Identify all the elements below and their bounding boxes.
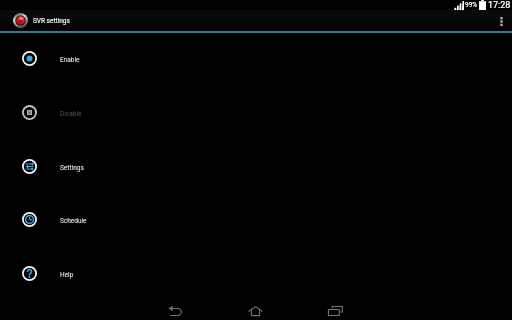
- button[interactable]: Schedule: [0, 192, 512, 246]
- staticText: Schedule: [60, 217, 87, 225]
- staticText: Help: [60, 271, 74, 279]
- button[interactable]: Settings: [0, 139, 512, 193]
- button[interactable]: Home: [241, 301, 269, 320]
- button[interactable]: Recents: [321, 301, 349, 320]
- staticText: 99%: [465, 1, 478, 9]
- button[interactable]: Disable: [0, 85, 512, 139]
- staticText: SVR settings: [33, 17, 70, 25]
- staticText: 17:28: [488, 0, 511, 10]
- staticText: Settings: [60, 164, 84, 172]
- button[interactable]: Back: [161, 301, 189, 320]
- button[interactable]: More options: [490, 10, 512, 31]
- button[interactable]: Help: [0, 246, 512, 300]
- staticText: Enable: [60, 56, 80, 64]
- button[interactable]: Enable: [0, 31, 512, 85]
- staticText: Disable: [60, 110, 82, 118]
